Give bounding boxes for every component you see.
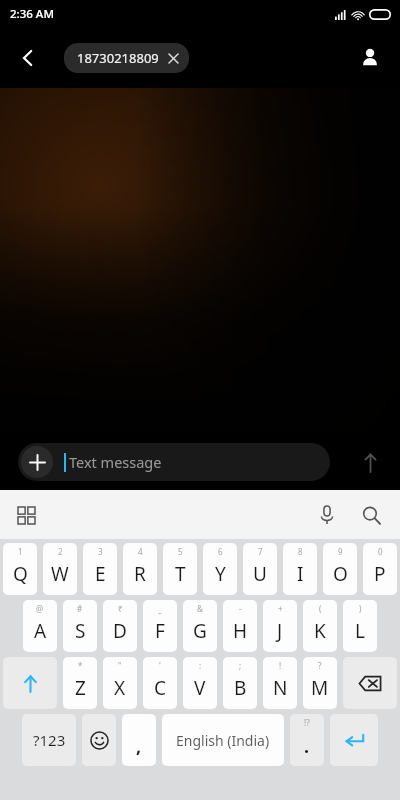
button[interactable]: 7 — [243, 543, 277, 595]
button[interactable]: 4 — [123, 543, 157, 595]
button[interactable]: " — [103, 657, 137, 709]
staticText: English (India) — [176, 731, 270, 750]
staticText: ₹ — [118, 603, 123, 614]
staticText: L — [355, 618, 365, 644]
button[interactable]: , — [122, 714, 156, 766]
button[interactable]: Contact details — [348, 36, 392, 80]
staticText: ; — [239, 660, 242, 671]
staticText: V — [194, 675, 206, 701]
staticText: Z — [75, 675, 86, 701]
button[interactable]: 18730218809 — [64, 43, 189, 73]
staticText: M — [311, 675, 329, 701]
staticText: H — [233, 618, 248, 644]
button[interactable]: Add attachment — [21, 446, 53, 478]
staticText: 0 — [378, 546, 383, 557]
staticText: !? — [304, 717, 310, 728]
button[interactable]: 6 — [203, 543, 237, 595]
staticText: N — [273, 675, 288, 701]
staticText: F — [155, 618, 165, 644]
button[interactable]: Add attachment — [18, 443, 330, 481]
button[interactable]: Enter — [330, 714, 378, 766]
staticText: 4 — [138, 546, 143, 557]
button[interactable]: ) — [343, 600, 377, 652]
staticText: K — [314, 618, 326, 644]
staticText: 2:36 AM — [10, 6, 54, 22]
staticText: 6 — [218, 546, 223, 557]
button[interactable]: 9 — [323, 543, 357, 595]
button[interactable]: Symbols — [22, 714, 76, 766]
button[interactable]: ' — [143, 657, 177, 709]
staticText: . — [304, 734, 310, 759]
staticText: P — [374, 561, 386, 587]
button[interactable]: Shift — [3, 657, 57, 709]
staticText: @ — [36, 603, 44, 614]
staticText: C — [154, 675, 167, 701]
staticText: E — [95, 561, 106, 587]
staticText: : — [199, 660, 202, 671]
staticText: # — [77, 603, 83, 614]
button[interactable]: ! — [263, 657, 297, 709]
staticText: B — [234, 675, 247, 701]
staticText: _ — [158, 603, 162, 614]
staticText: 18730218809 — [77, 49, 159, 67]
staticText: W — [51, 561, 69, 587]
staticText: ' — [159, 660, 161, 671]
staticText: S — [75, 618, 86, 644]
button[interactable]: ; — [223, 657, 257, 709]
staticText: ( — [319, 603, 322, 614]
staticText: * — [78, 660, 83, 671]
button[interactable]: @ — [23, 600, 57, 652]
button[interactable]: Space, English (India) — [162, 714, 284, 766]
staticText: + — [278, 603, 283, 614]
button[interactable]: !? — [290, 714, 324, 766]
button[interactable]: : — [183, 657, 217, 709]
staticText: 7 — [258, 546, 263, 557]
staticText: T — [175, 561, 186, 587]
staticText: Text message — [69, 452, 162, 472]
button[interactable]: ( — [303, 600, 337, 652]
staticText: 1 — [18, 546, 23, 557]
button[interactable]: Delete — [343, 657, 397, 709]
button[interactable]: 1 — [3, 543, 37, 595]
staticText: & — [197, 603, 203, 614]
button[interactable]: - — [223, 600, 257, 652]
button[interactable]: Back — [6, 36, 50, 80]
staticText: 9 — [338, 546, 343, 557]
staticText: Q — [13, 561, 28, 587]
staticText: 8 — [298, 546, 303, 557]
staticText: D — [113, 618, 127, 644]
staticText: ) — [359, 603, 362, 614]
staticText: G — [193, 618, 207, 644]
button[interactable]: ? — [303, 657, 337, 709]
button[interactable]: + — [263, 600, 297, 652]
staticText: ?123 — [33, 730, 66, 750]
button[interactable]: Send — [348, 440, 392, 484]
staticText: 2 — [58, 546, 63, 557]
staticText: 5 — [178, 546, 183, 557]
button[interactable]: 3 — [83, 543, 117, 595]
button[interactable]: 2 — [43, 543, 77, 595]
staticText: ! — [279, 660, 282, 671]
button[interactable]: & — [183, 600, 217, 652]
staticText: I — [297, 561, 304, 587]
button[interactable]: # — [63, 600, 97, 652]
staticText: " — [118, 660, 122, 671]
button[interactable]: Keyboard options — [8, 497, 44, 533]
staticText: ? — [318, 660, 322, 671]
button[interactable]: Emoji — [82, 714, 116, 766]
button[interactable]: _ — [143, 600, 177, 652]
button[interactable]: Voice input — [308, 496, 346, 534]
button[interactable]: Search — [352, 496, 390, 534]
button[interactable]: * — [63, 657, 97, 709]
staticText: U — [253, 561, 267, 587]
staticText: 3 — [98, 546, 103, 557]
button[interactable]: ₹ — [103, 600, 137, 652]
button[interactable]: 0 — [363, 543, 397, 595]
staticText: , — [136, 734, 142, 759]
button[interactable]: 8 — [283, 543, 317, 595]
staticText: - — [239, 603, 242, 614]
button[interactable]: 5 — [163, 543, 197, 595]
staticText: R — [134, 561, 146, 587]
staticText: Y — [215, 561, 226, 587]
staticText: J — [277, 618, 283, 644]
